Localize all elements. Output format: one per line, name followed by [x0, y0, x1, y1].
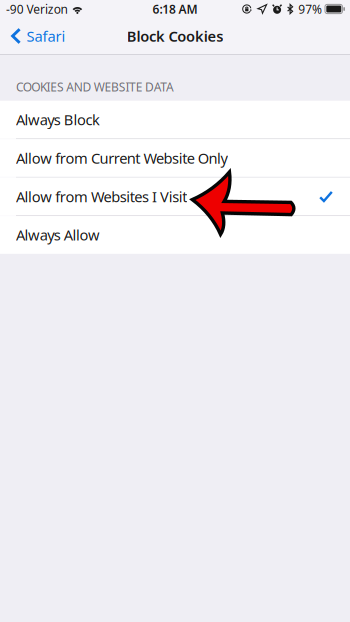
staticText: Allow from Current Website Only	[16, 148, 227, 168]
staticText: Safari	[26, 26, 65, 46]
button[interactable]: Always Allow	[0, 216, 350, 254]
button[interactable]: Always Block	[0, 101, 350, 138]
button[interactable]: Allow from Current Website Only	[0, 139, 350, 177]
staticText: 97%	[298, 1, 322, 17]
button[interactable]: Allow from Websites I Visit	[0, 178, 350, 215]
staticText: Block Cookies	[127, 26, 223, 46]
button[interactable]: Safari	[0, 18, 75, 54]
staticText: Always Allow	[16, 225, 100, 245]
staticText: -90 Verizon	[6, 1, 67, 17]
staticText: Always Block	[16, 110, 100, 129]
staticText: Allow from Websites I Visit	[16, 187, 187, 206]
staticText: 6:18 AM	[153, 1, 197, 17]
staticText: COOKIES AND WEBSITE DATA	[16, 79, 174, 95]
